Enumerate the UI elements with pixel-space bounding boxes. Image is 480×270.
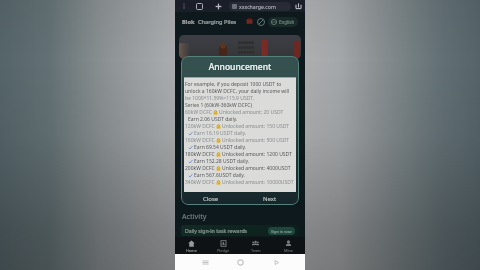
staticText: be 1000*11.59%=115.9 USDT. (185, 95, 254, 102)
button[interactable]: English (268, 17, 298, 27)
button[interactable]: New tab (214, 2, 223, 11)
staticText: For example, if you deposit 1000 USDT to (185, 81, 282, 88)
staticText: 200kW DCFC (185, 165, 215, 172)
staticText: Team (251, 248, 261, 253)
staticText: xxxcharge.com (239, 3, 276, 10)
staticText: English (279, 19, 295, 25)
button[interactable]: Home (234, 256, 246, 268)
button[interactable]: Back (270, 256, 282, 268)
staticText: Charging Piles (198, 18, 237, 26)
staticText: Activity (182, 212, 207, 222)
staticText: Blok (182, 18, 195, 26)
button[interactable]: Next (240, 192, 299, 205)
staticText: Series 1 (60kW-360kW DCFC) (185, 102, 253, 109)
button[interactable]: Recents (199, 256, 211, 268)
staticText: Unlocked amount: 1200 USDT (222, 151, 292, 158)
staticText: Daily sign-in task rewards (185, 227, 248, 234)
staticText: Earn 16.19 USDT daily. (194, 130, 247, 137)
staticText: Unlocked amount: 4000USDT (222, 165, 291, 172)
staticText: Earn 567.6USDT daily. (194, 172, 245, 179)
staticText: Mine (284, 248, 293, 253)
staticText: Unlocked amount: 500 USDT (222, 137, 290, 144)
staticText: Home (186, 248, 197, 253)
staticText: 120kW DCFC (185, 123, 215, 130)
staticText: unlock a 160kW DCFC, your daily income w… (185, 88, 290, 95)
staticText: Earn 152.28 USDT daily. (194, 158, 250, 165)
staticText: Announcement (181, 61, 299, 73)
button[interactable]: Pledge (207, 237, 239, 254)
staticText: Sign in now (271, 229, 292, 234)
button[interactable]: Close (181, 192, 240, 205)
staticText: Close (203, 195, 219, 203)
button[interactable]: Daily sign-in task rewards (181, 225, 299, 236)
button[interactable]: More options (180, 2, 188, 10)
staticText: Unlocked amount: 10000USDT (222, 179, 294, 186)
staticText: 180kW DCFC (185, 151, 215, 158)
button[interactable]: Team (239, 237, 272, 254)
button[interactable]: Downloads (294, 2, 303, 11)
staticText: 160kW DCFC (185, 137, 215, 144)
button[interactable]: Tabs (195, 2, 204, 11)
button[interactable]: Home (175, 237, 207, 254)
button[interactable]: xxxcharge.com (229, 2, 291, 11)
staticText: Earn 69.54 USDT daily. (194, 144, 247, 151)
staticText: Unlocked amount: 150 USDT (222, 123, 290, 130)
button[interactable]: Notifications (245, 17, 254, 26)
button[interactable]: Mine (272, 237, 305, 254)
button[interactable]: Support (256, 17, 265, 26)
staticText: Earn 2.06 USDT daily. (188, 116, 238, 123)
staticText: Unlocked amount: 20 USDT (219, 109, 284, 116)
staticText: Pledge (217, 248, 230, 253)
staticText: 340kW DCFC (185, 179, 215, 186)
staticText: Next (263, 195, 277, 203)
staticText: 60kW DCFC (185, 109, 212, 116)
